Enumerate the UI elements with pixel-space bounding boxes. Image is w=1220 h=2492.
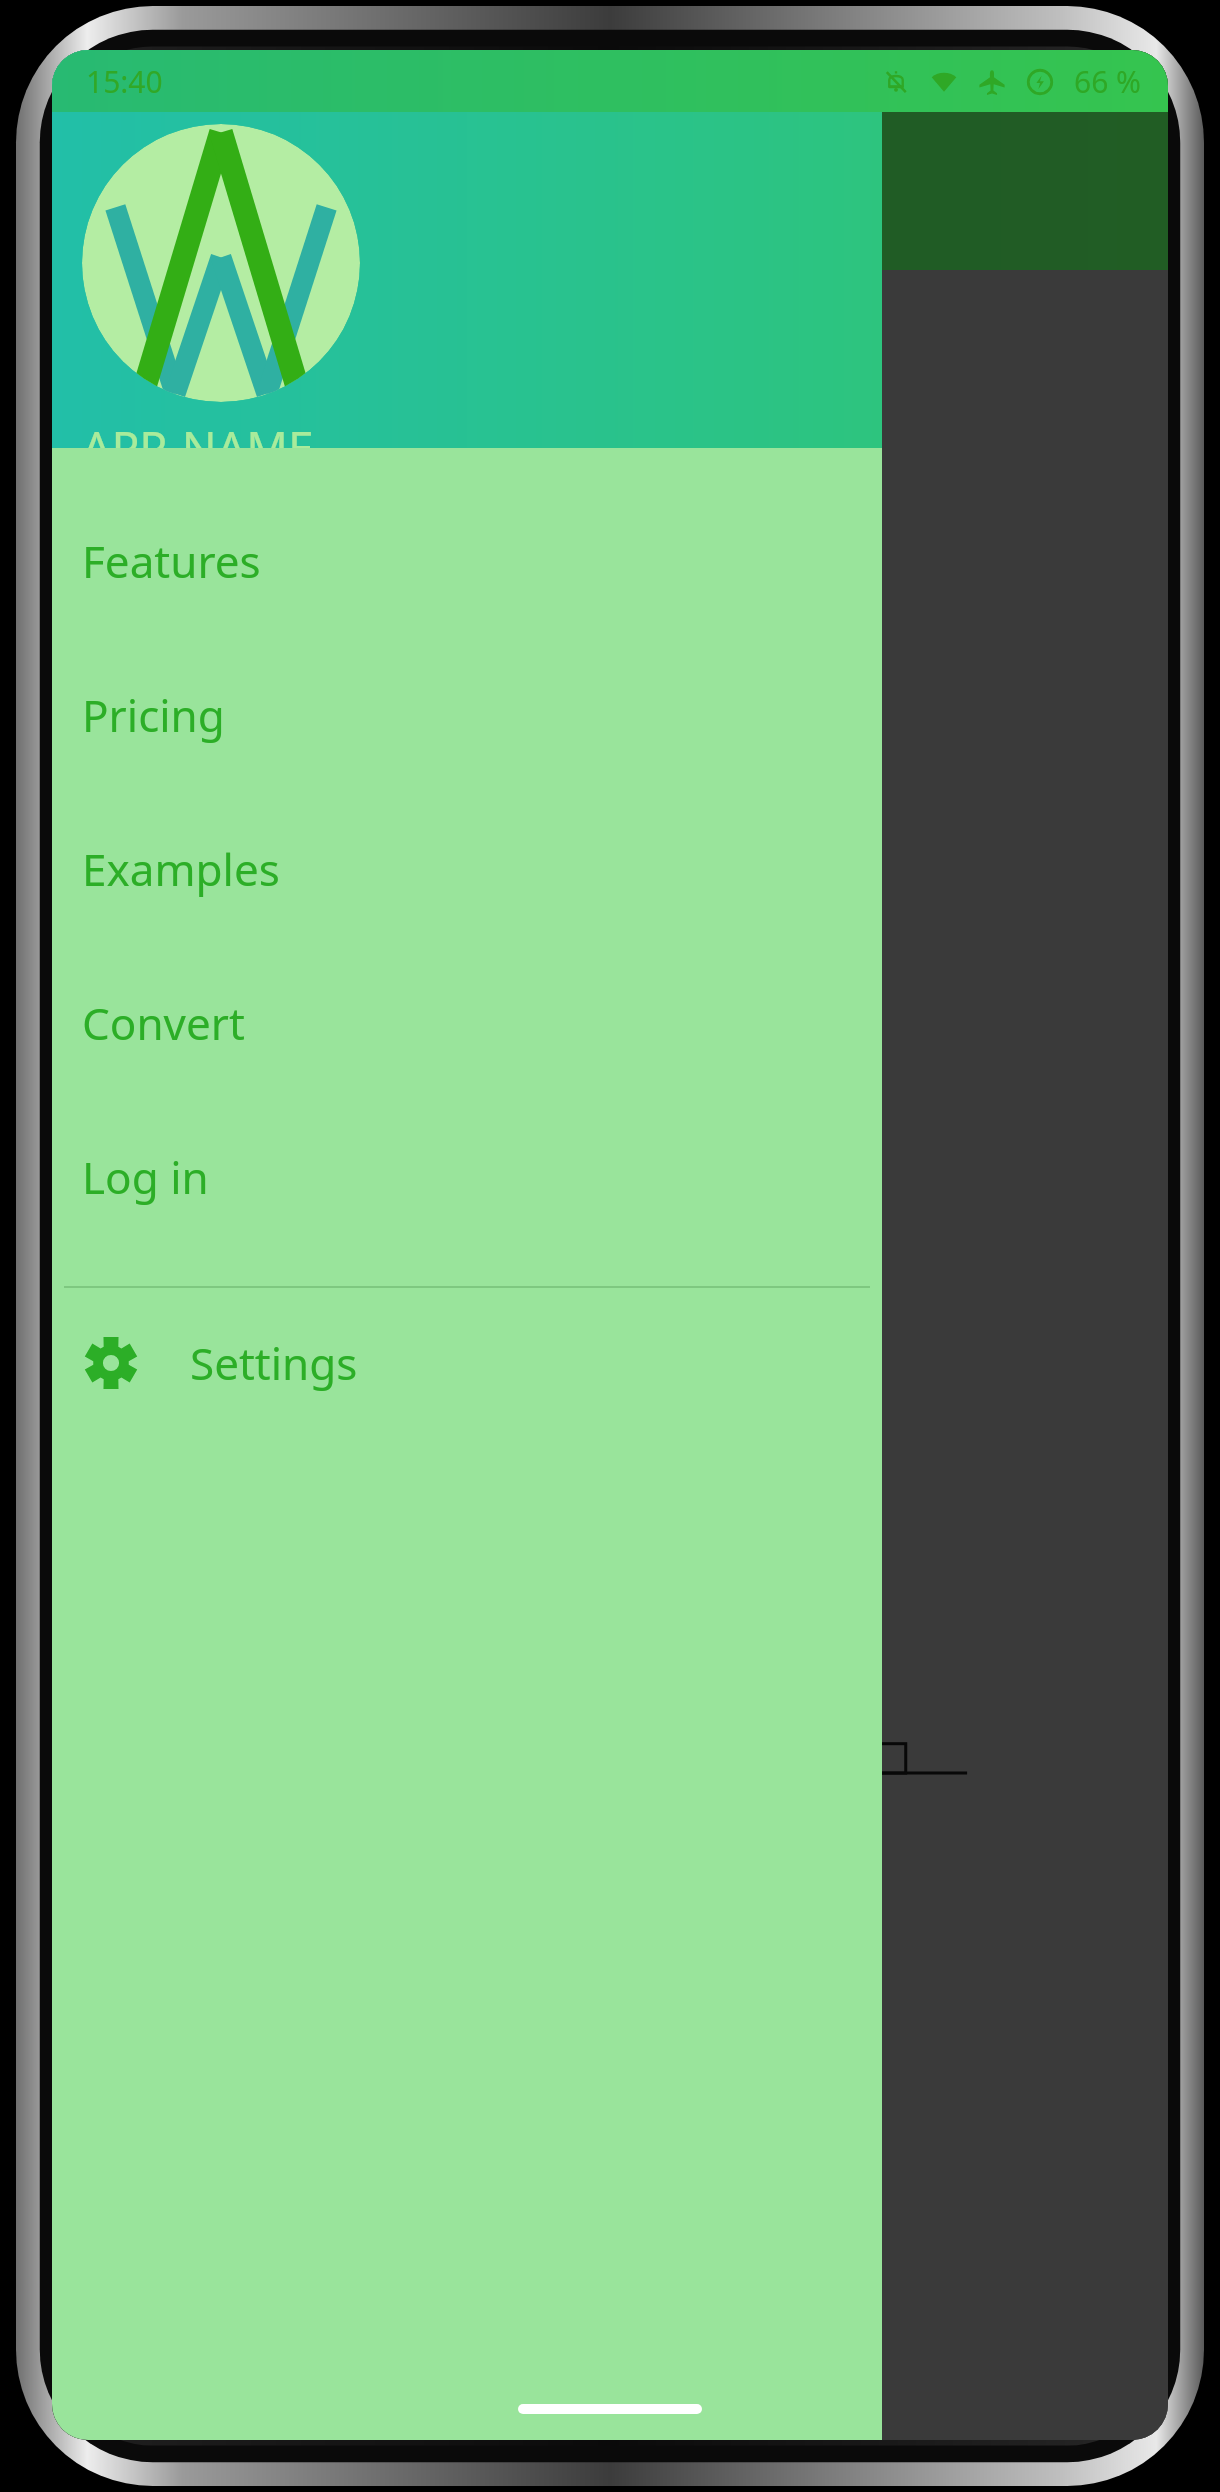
button[interactable]: Settings — [52, 1288, 882, 1438]
staticText: Convert — [82, 993, 245, 1053]
staticText: will — [152, 1020, 230, 1088]
staticText: 66 % — [1074, 61, 1142, 102]
other: Settings — [84, 1336, 138, 1390]
staticText: idea into — [152, 668, 357, 736]
button[interactable]: Convert — [52, 946, 882, 1100]
button[interactable]: Pricing — [52, 638, 882, 792]
staticText: Settings — [190, 1333, 358, 1393]
staticText: Examples — [82, 839, 280, 899]
staticText: Log in — [82, 1147, 209, 1207]
staticText: Features — [82, 531, 261, 591]
staticText: 15:40 — [86, 61, 163, 102]
button[interactable]: Examples — [52, 792, 882, 946]
staticText: APP-NAME — [82, 416, 314, 448]
staticText: Pricing — [82, 685, 225, 745]
button[interactable]: Log in — [52, 1100, 882, 1254]
button[interactable]: Order App — [202, 1120, 522, 1232]
button[interactable]: Features — [52, 484, 882, 638]
